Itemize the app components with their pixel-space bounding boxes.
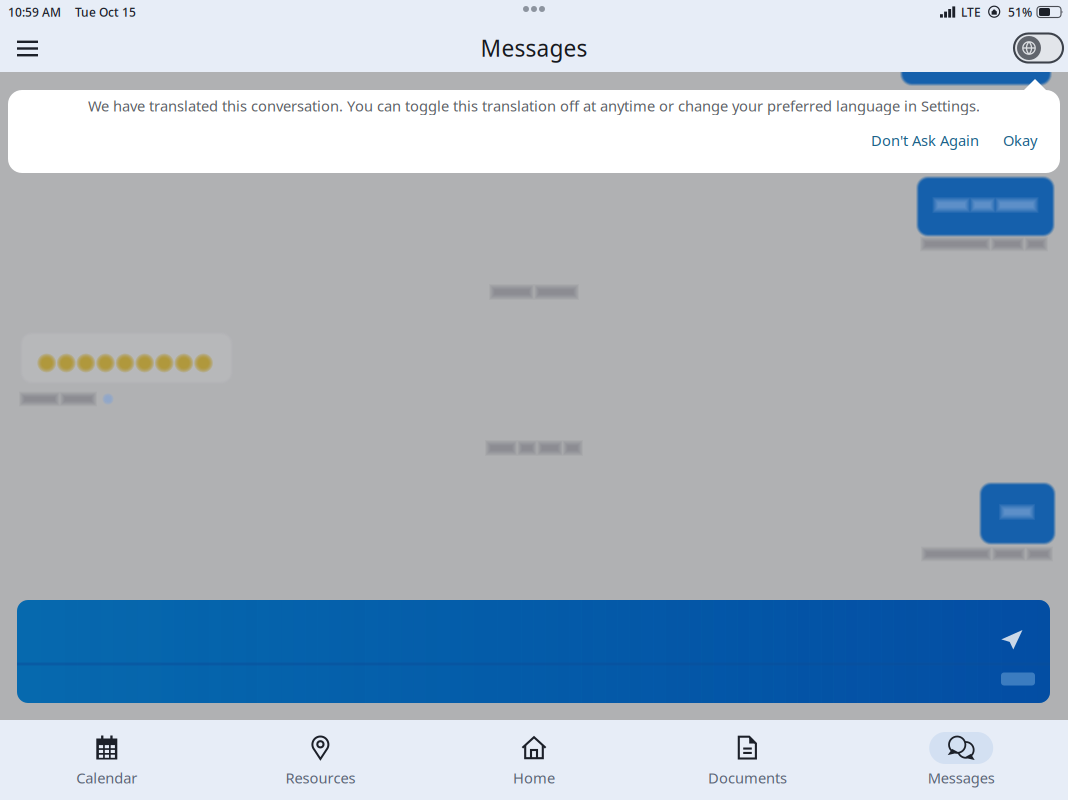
- button[interactable]: Menu: [8, 30, 47, 66]
- staticText: Okay: [1003, 130, 1037, 150]
- staticText: Calendar: [76, 768, 137, 787]
- staticText: Documents: [708, 768, 787, 787]
- staticText: Messages: [928, 768, 995, 787]
- staticText: Messages: [480, 33, 587, 63]
- staticText: 10:59 AM: [8, 4, 61, 20]
- button[interactable]: Messages: [854, 720, 1068, 800]
- button[interactable]: Resources: [214, 720, 427, 800]
- staticText: We have translated this conversation. Yo…: [88, 96, 980, 115]
- staticText: LTE: [961, 4, 981, 20]
- button[interactable]: Translation toggle: [1006, 27, 1063, 68]
- staticText: Don't Ask Again: [871, 130, 979, 150]
- staticText: Home: [513, 768, 555, 787]
- staticText: 51%: [1008, 4, 1032, 20]
- button[interactable]: Calendar: [0, 720, 214, 800]
- staticText: Tue Oct 15: [75, 4, 136, 20]
- button[interactable]: Don't Ask Again: [864, 123, 986, 157]
- staticText: Resources: [285, 768, 355, 787]
- button[interactable]: Okay: [996, 123, 1044, 157]
- button[interactable]: Home: [427, 720, 641, 800]
- button[interactable]: Documents: [641, 720, 854, 800]
